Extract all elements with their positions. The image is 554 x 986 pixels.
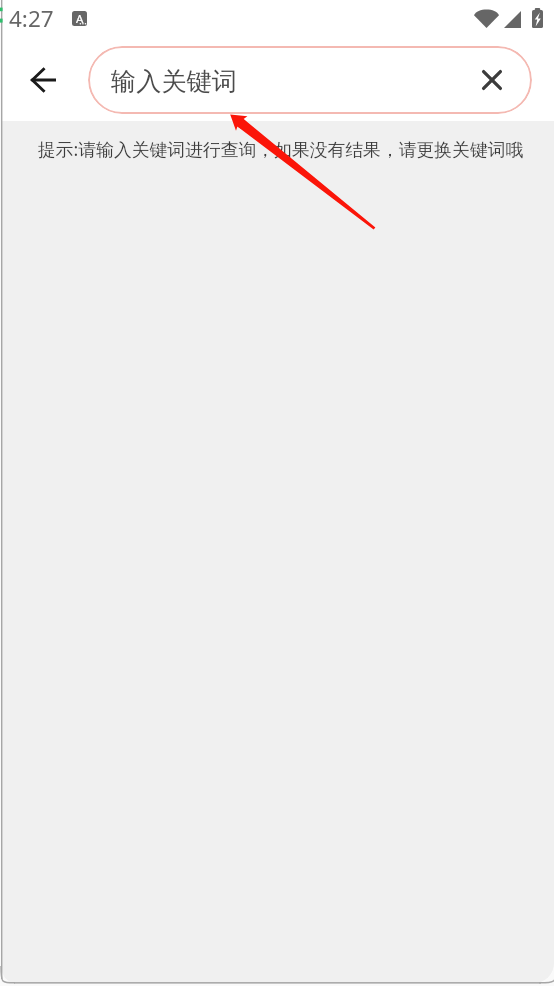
button[interactable]: Back bbox=[19, 56, 67, 104]
staticText: A bbox=[76, 11, 84, 26]
staticText: 输入关键词 bbox=[111, 66, 237, 98]
staticText: 提示:请输入关键词进行查询，如果没有结果，请更换关键词哦 bbox=[38, 137, 524, 161]
staticText: 4:27 bbox=[9, 3, 54, 34]
button[interactable]: 输入关键词 bbox=[88, 46, 532, 114]
button[interactable]: Clear bbox=[471, 59, 513, 101]
